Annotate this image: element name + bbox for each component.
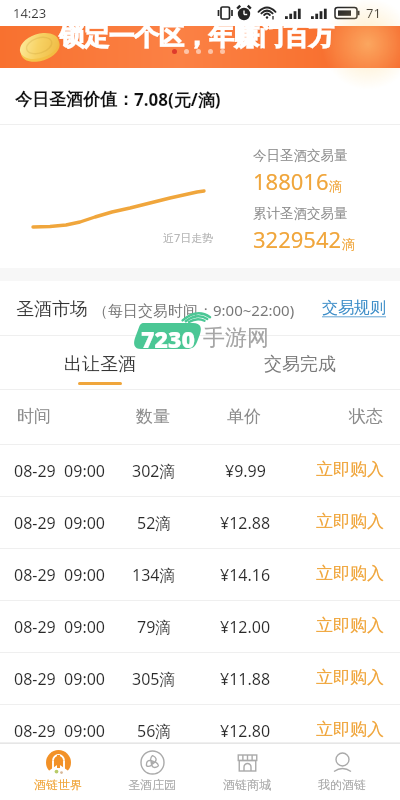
staticText: 立即购入 [316,667,384,688]
button[interactable]: 立即购入 [300,653,400,705]
staticText: 08-29 09:00 [14,564,105,586]
button[interactable]: 立即购入 [300,705,400,743]
staticText: 14:23 [13,4,47,22]
staticText: 立即购入 [316,459,384,480]
staticText: 134滴 [132,564,176,586]
button[interactable]: 交易完成 [200,336,400,389]
staticText: 圣酒庄园 [128,777,176,792]
staticText: 08-29 09:00 [14,460,105,482]
staticText: 3229542 [253,224,342,254]
staticText: 立即购入 [316,563,384,584]
staticText: 08-29 09:00 [14,668,105,690]
staticText: 时间 [17,406,51,427]
button[interactable]: 交易规则 [322,298,386,318]
staticText: 累计圣酒交易量 [253,205,348,222]
staticText: 数量 [136,406,170,427]
staticText: 我的酒链 [318,777,366,792]
button[interactable]: 出让圣酒 [0,336,200,389]
staticText: （每日交易时间：9:00~22:00) [93,300,295,320]
staticText: 7230 [141,323,195,354]
button[interactable]: 立即购入 [300,445,400,497]
staticText: 锁定一个区，年赚门百万 [59,21,334,52]
staticText: 188016 [253,166,329,196]
staticText: 08-29 09:00 [14,616,105,638]
staticText: 酒链商城 [223,777,271,792]
button[interactable]: 酒链商城 [199,744,294,800]
staticText: 近7日走势 [163,230,214,245]
button[interactable]: 我的酒链 [294,744,389,800]
staticText: 立即购入 [316,719,384,740]
staticText: 交易规则 [322,298,386,318]
staticText: 立即购入 [316,615,384,636]
staticText: 52滴 [137,512,172,534]
button[interactable]: 立即购入 [300,497,400,549]
staticText: 56滴 [137,720,172,742]
staticText: 7.08(元/滴) [134,88,221,111]
button[interactable]: 立即购入 [300,549,400,601]
staticText: 302滴 [132,460,176,482]
staticText: 圣酒市场 [16,298,88,321]
staticText: ¥14.16 [220,564,271,586]
staticText: 立即购入 [316,511,384,532]
staticText: ¥11.88 [220,668,271,690]
staticText: 交易完成 [264,353,336,376]
staticText: ¥12.00 [220,616,271,638]
staticText: 手游网 [203,324,269,352]
button[interactable]: 圣酒庄园 [105,744,199,800]
staticText: 状态 [349,406,383,427]
staticText: 今日圣酒交易量 [253,147,348,164]
staticText: 出让圣酒 [64,353,136,376]
staticText: 今日圣酒价值： [15,89,134,110]
staticText: 酒链世界 [34,777,82,792]
button[interactable]: 酒链世界 [11,744,105,800]
staticText: ¥12.80 [220,720,271,742]
staticText: ¥9.99 [225,460,266,482]
staticText: 滴 [329,178,342,194]
staticText: 08-29 09:00 [14,720,105,742]
staticText: 79滴 [137,616,172,638]
staticText: 滴 [342,236,355,252]
button[interactable]: 立即购入 [300,601,400,653]
staticText: 305滴 [132,668,176,690]
staticText: 08-29 09:00 [14,512,105,534]
staticText: 单价 [227,406,261,427]
staticText: 71 [366,4,381,22]
staticText: ¥12.88 [220,512,271,534]
